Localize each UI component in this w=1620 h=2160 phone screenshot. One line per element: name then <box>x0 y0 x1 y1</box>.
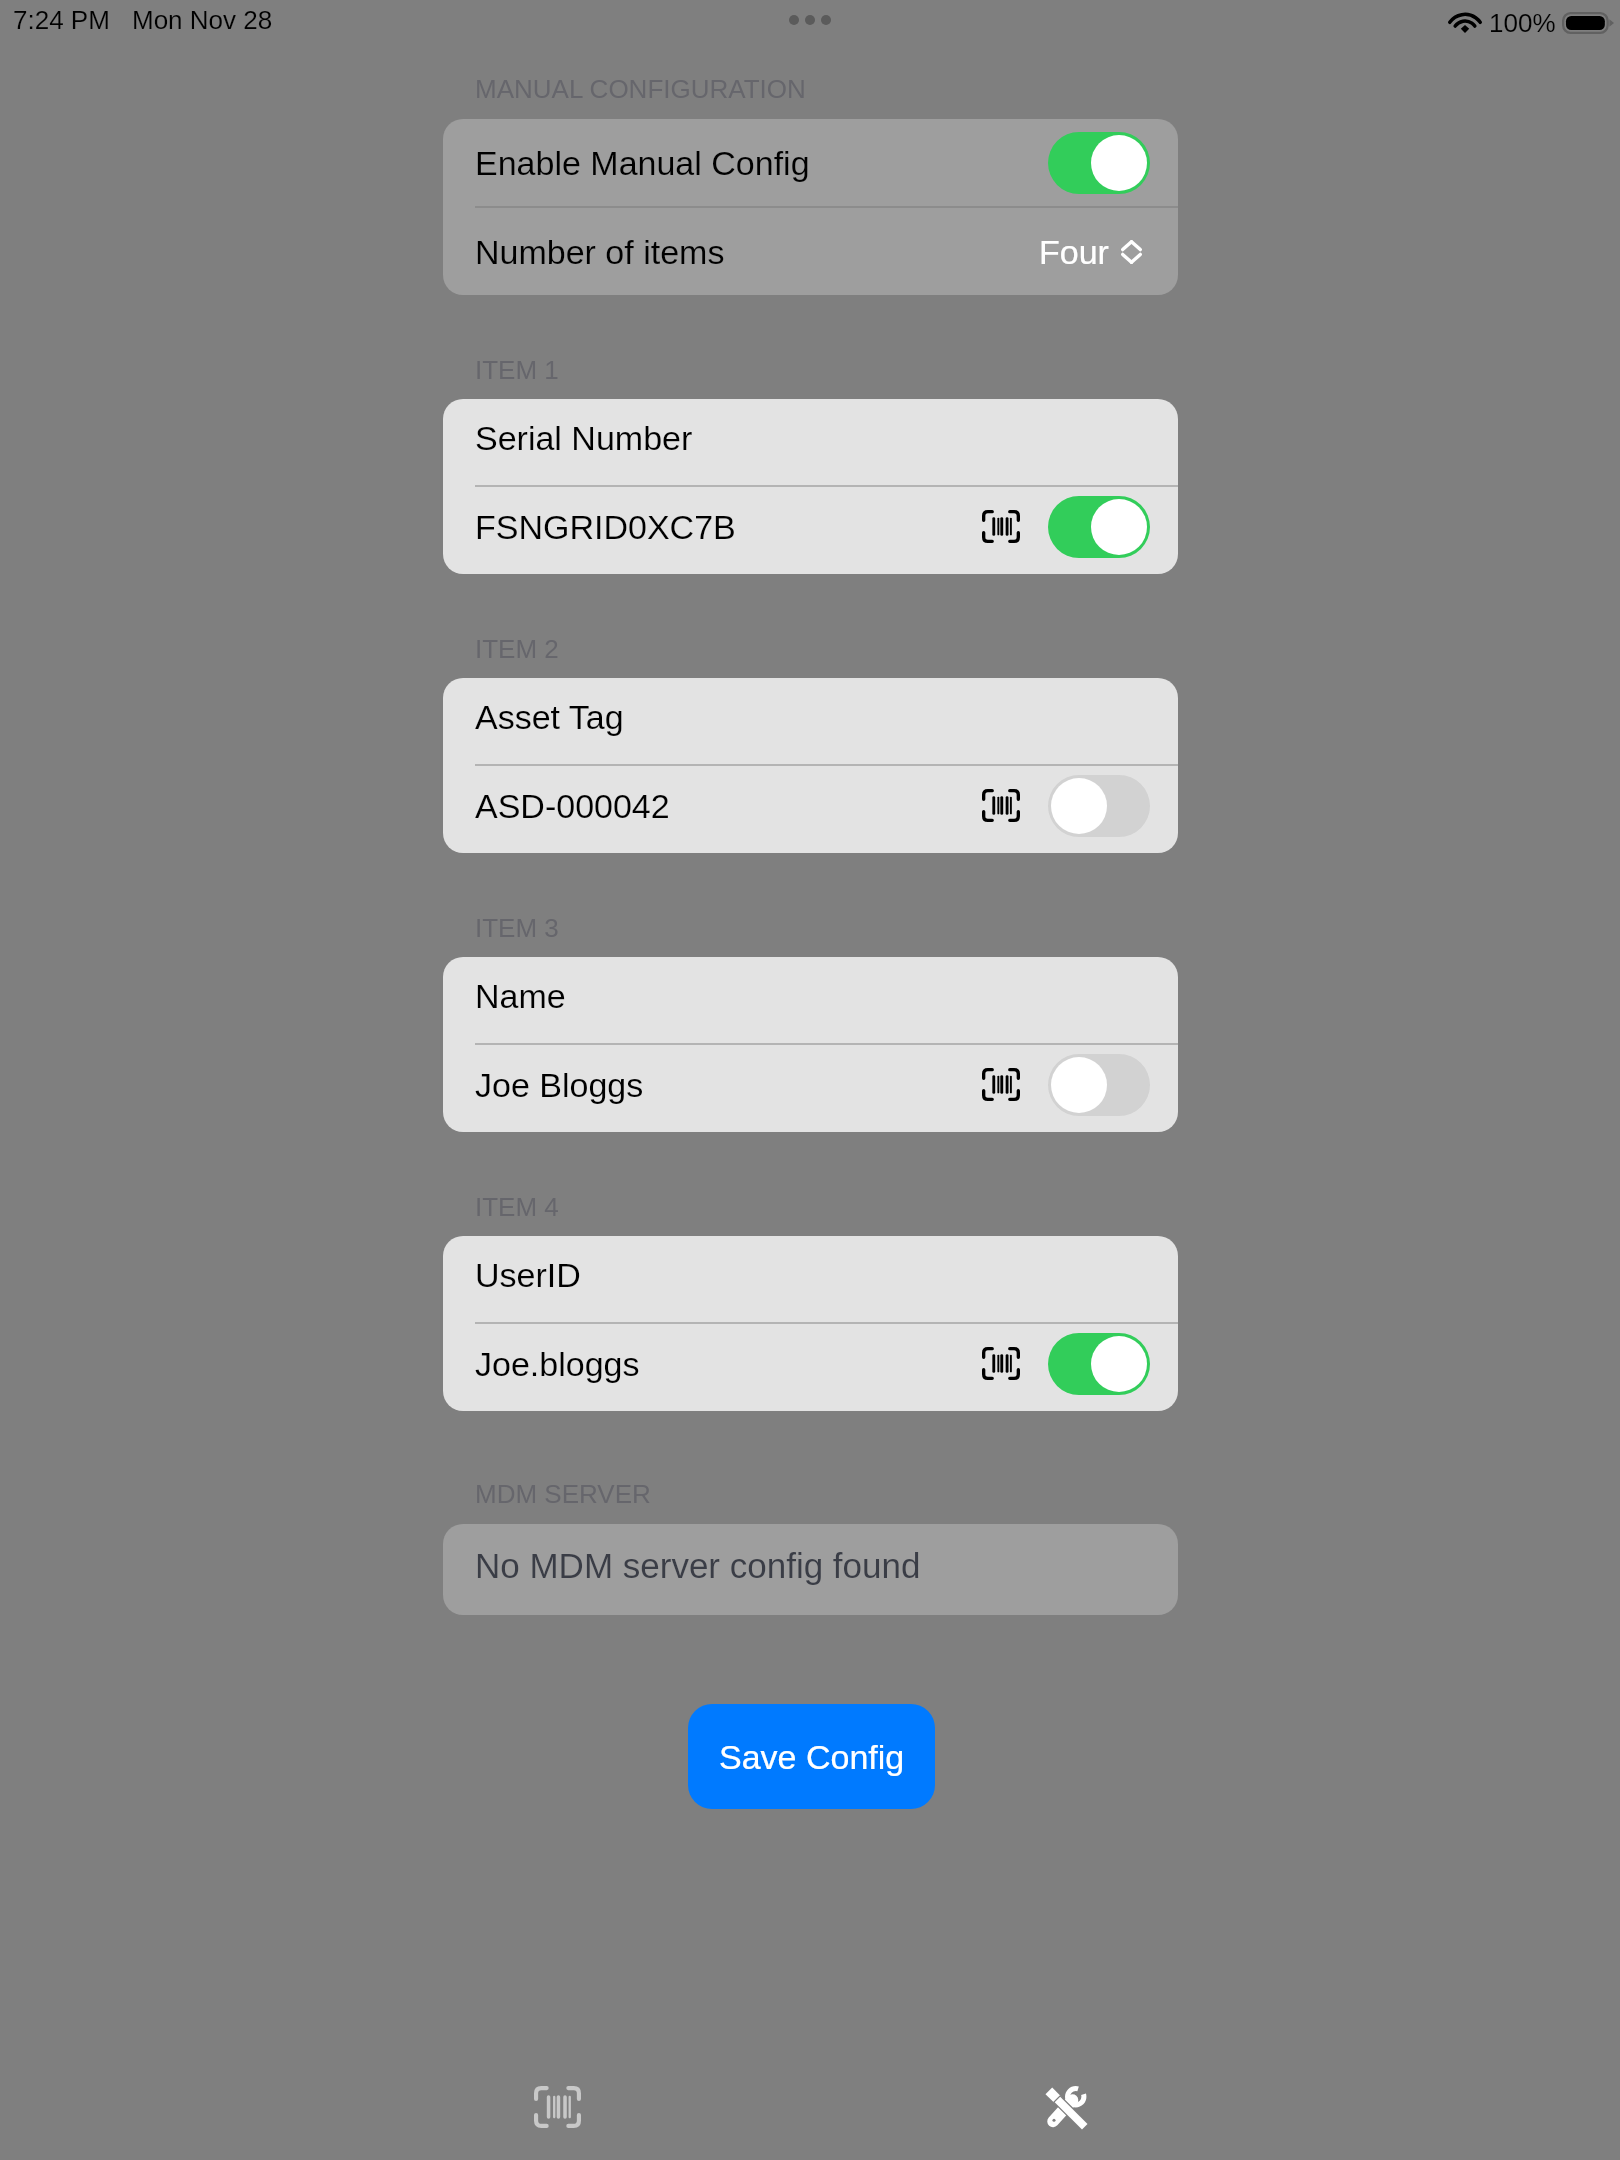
staticText: ITEM 3 <box>475 913 559 942</box>
button[interactable]: No MDM server config found <box>443 1524 1178 1615</box>
staticText: Mon Nov 28 <box>132 5 273 34</box>
button[interactable]: Name <box>443 957 1178 1043</box>
button[interactable] <box>1048 775 1150 837</box>
button[interactable]: Joe.bloggs <box>443 1324 1178 1411</box>
staticText: ASD-000042 <box>475 787 670 825</box>
button[interactable] <box>1048 1054 1150 1116</box>
staticText: ITEM 2 <box>475 634 559 663</box>
staticText: ITEM 4 <box>475 1192 559 1221</box>
staticText: MANUAL CONFIGURATION <box>475 74 806 103</box>
staticText: Joe.bloggs <box>475 1345 640 1383</box>
staticText: Joe Bloggs <box>475 1066 644 1104</box>
staticText: 7:24 PM <box>13 5 110 34</box>
button[interactable]: Scan barcode <box>527 2079 587 2135</box>
button[interactable]: Scan Name <box>982 1068 1020 1101</box>
staticText: Serial Number <box>475 419 693 457</box>
button[interactable]: Number of items <box>443 208 1178 295</box>
button[interactable]: ASD-000042 <box>443 766 1178 853</box>
button[interactable]: Scan UserID <box>982 1347 1020 1380</box>
staticText: MDM SERVER <box>475 1479 651 1508</box>
button[interactable]: UserID <box>443 1236 1178 1322</box>
staticText: ITEM 1 <box>475 355 559 384</box>
staticText: Four <box>1039 233 1109 271</box>
staticText: Asset Tag <box>475 698 624 736</box>
staticText: Enable Manual Config <box>475 144 810 182</box>
button[interactable]: Save Config <box>688 1704 935 1809</box>
staticText: Number of items <box>475 233 725 271</box>
button[interactable]: Tools <box>1035 2079 1095 2135</box>
staticText: Name <box>475 977 566 1015</box>
staticText: 100% <box>1489 8 1556 37</box>
staticText: No MDM server config found <box>475 1546 921 1585</box>
button[interactable]: Serial Number <box>443 399 1178 485</box>
button[interactable]: Enable Manual Config <box>443 119 1178 206</box>
button[interactable]: Asset Tag <box>443 678 1178 764</box>
staticText: UserID <box>475 1256 581 1294</box>
button[interactable] <box>1048 132 1150 194</box>
staticText: Save Config <box>719 1738 905 1776</box>
button[interactable]: FSNGRID0XC7B <box>443 487 1178 574</box>
button[interactable]: Scan Asset Tag <box>982 789 1020 822</box>
button[interactable]: Change number of items <box>1121 240 1142 264</box>
staticText: FSNGRID0XC7B <box>475 508 736 546</box>
button[interactable] <box>1048 1333 1150 1395</box>
button[interactable] <box>1048 496 1150 558</box>
button[interactable]: Joe Bloggs <box>443 1045 1178 1132</box>
button[interactable]: Scan Serial Number <box>982 510 1020 543</box>
